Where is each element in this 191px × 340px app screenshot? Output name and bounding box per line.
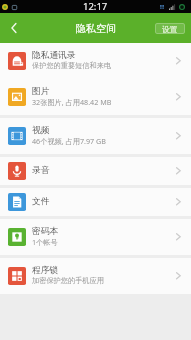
- staticText: 视频: [32, 125, 50, 136]
- staticText: 密码本: [32, 226, 59, 237]
- staticText: 保护您的重要短信和来电: [32, 61, 112, 70]
- button[interactable]: 密码本: [0, 219, 191, 255]
- button[interactable]: 程序锁: [0, 258, 191, 294]
- button[interactable]: 录音: [0, 157, 191, 185]
- button[interactable]: Back: [0, 14, 28, 42]
- staticText: 设置: [162, 24, 178, 34]
- staticText: 文件: [32, 196, 50, 207]
- button[interactable]: 文件: [0, 188, 191, 216]
- staticText: 32张图片, 占用48.42 MB: [32, 97, 112, 107]
- button[interactable]: 设置: [155, 23, 185, 34]
- button[interactable]: 视频: [0, 118, 191, 154]
- staticText: 加密保护您的手机应用: [32, 276, 104, 285]
- staticText: 隐私通讯录: [32, 50, 76, 61]
- staticText: 1个帐号: [32, 237, 58, 247]
- staticText: 46个视频, 占用7.97 GB: [32, 136, 106, 146]
- staticText: 图片: [32, 86, 50, 97]
- staticText: 隐私空间: [76, 22, 116, 35]
- staticText: 录音: [32, 165, 50, 176]
- button[interactable]: 隐私通讯录: [0, 43, 191, 79]
- staticText: 12:17: [83, 0, 108, 13]
- button[interactable]: 图片: [0, 79, 191, 115]
- staticText: 程序锁: [32, 265, 59, 276]
